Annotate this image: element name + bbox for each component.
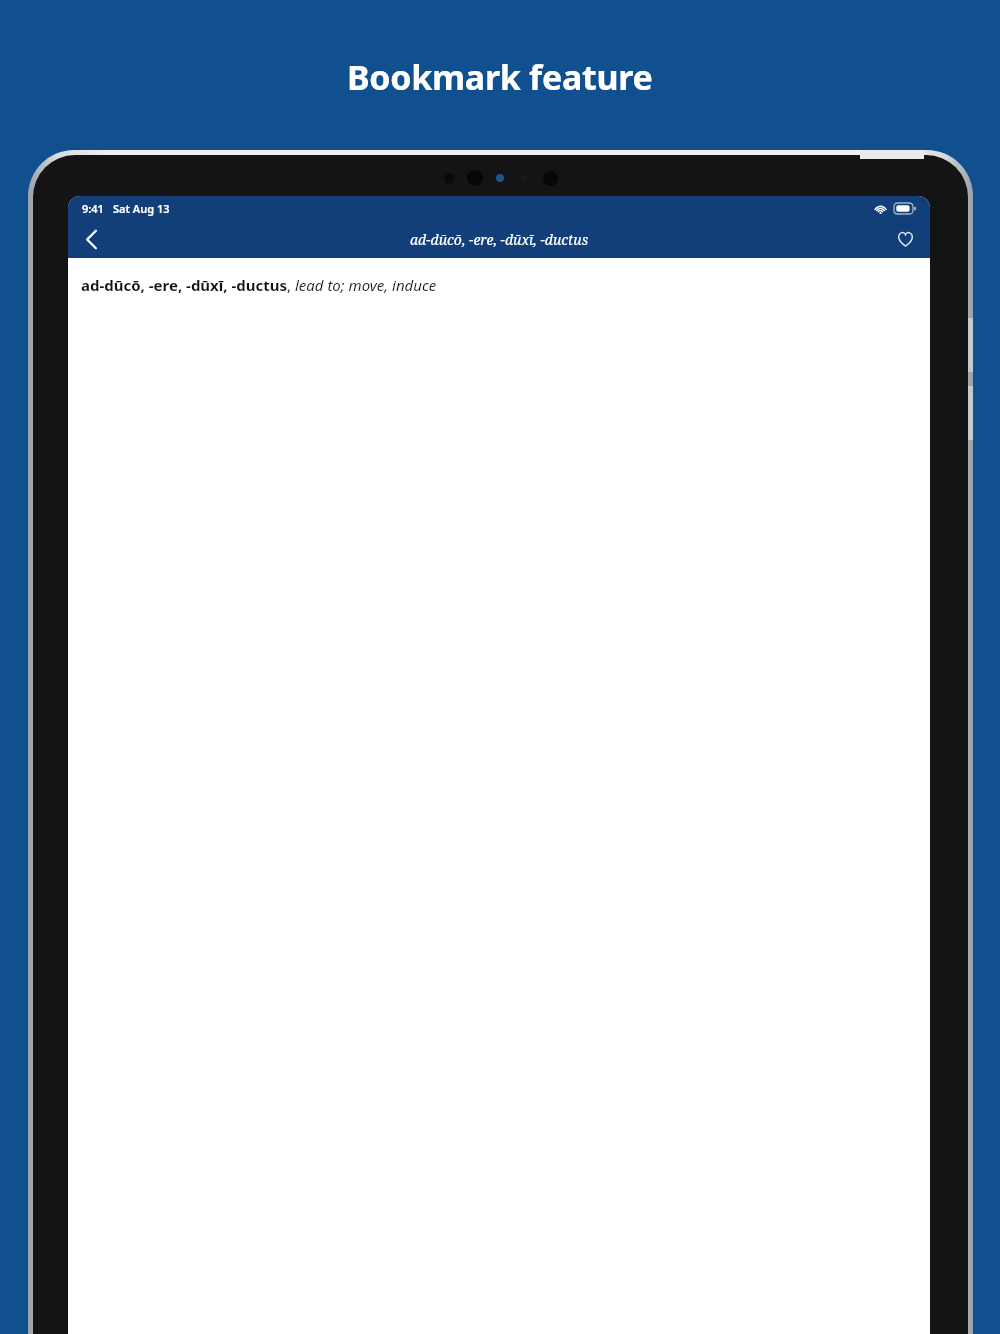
staticText: ad-dūcō, -ere, -dūxī, -ductus	[410, 230, 589, 249]
staticText: 9:41	[82, 201, 104, 216]
button[interactable]: Bookmark	[886, 220, 924, 258]
staticText: ad-dūcō, -ere, -dūxī, -ductus, lead to; …	[81, 275, 437, 295]
staticText: Bookmark feature	[347, 54, 653, 100]
staticText: Sat Aug 13	[113, 201, 170, 216]
button[interactable]: Back	[72, 220, 110, 258]
